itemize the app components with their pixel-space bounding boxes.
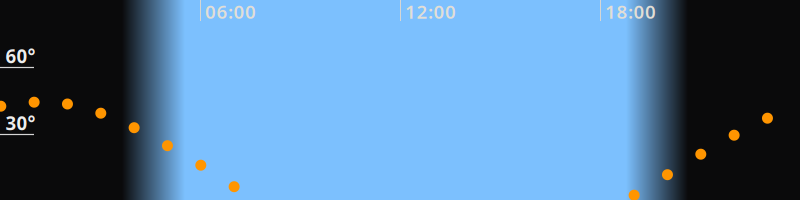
staticText: 06:00 (205, 0, 256, 24)
staticText: 60° (5, 44, 35, 68)
staticText: 18:00 (605, 0, 656, 24)
button[interactable]: 24-hour temperature chart (0, 0, 800, 200)
staticText: 12:00 (405, 0, 456, 24)
staticText: 30° (5, 111, 35, 135)
